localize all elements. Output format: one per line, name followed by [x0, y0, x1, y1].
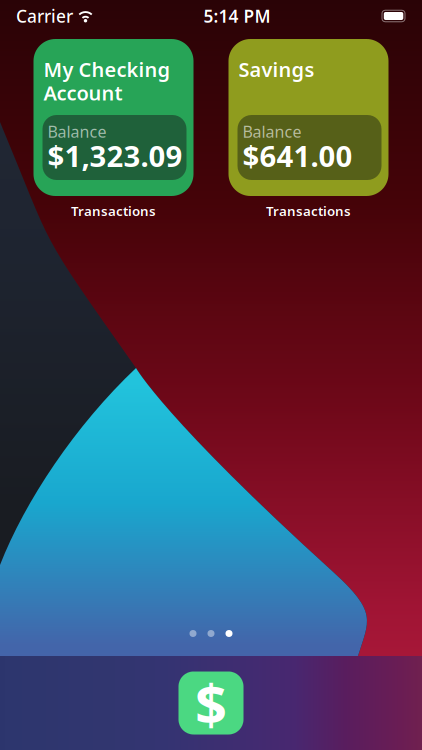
staticText: Savings	[238, 56, 314, 83]
staticText: 5:14 PM	[203, 4, 270, 27]
button[interactable]: My Checking	[33, 39, 193, 196]
staticText: My Checking	[43, 56, 170, 83]
staticText: $	[195, 666, 227, 740]
staticText: Transactions	[266, 202, 351, 220]
staticText: Account	[43, 80, 122, 106]
staticText: $1,323.09	[47, 136, 182, 175]
staticText: Balance	[47, 121, 106, 142]
staticText: Carrier	[16, 4, 73, 27]
staticText: $641.00	[242, 136, 352, 175]
staticText: Balance	[242, 121, 301, 142]
button[interactable]: Money	[178, 671, 243, 734]
button[interactable]: Savings	[228, 39, 388, 196]
staticText: Transactions	[71, 202, 156, 220]
